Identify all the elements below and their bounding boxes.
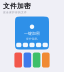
button[interactable] xyxy=(14,53,22,68)
staticText: 保护隐私 xyxy=(26,37,38,41)
staticText: 文件加密 xyxy=(3,2,31,10)
button[interactable] xyxy=(24,53,31,68)
button[interactable] xyxy=(33,53,40,68)
staticText: 一键加密 xyxy=(24,31,40,36)
staticText: 安全保护你的文件 xyxy=(3,11,27,14)
button[interactable] xyxy=(42,53,50,68)
